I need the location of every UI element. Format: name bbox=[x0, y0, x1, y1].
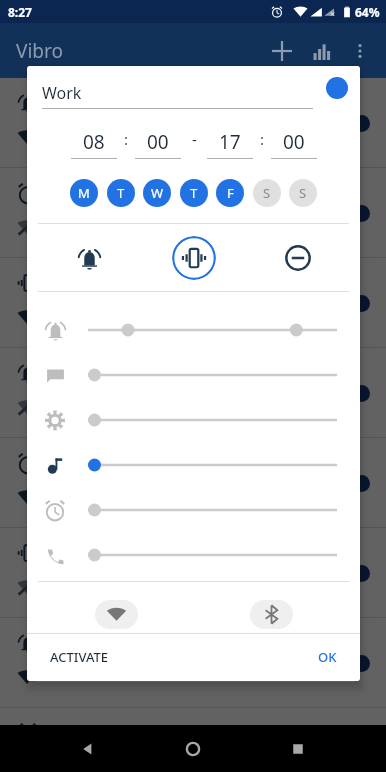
staticText: ACTIVATE bbox=[50, 648, 109, 666]
button[interactable] bbox=[0, 258, 386, 348]
button[interactable]: More options bbox=[342, 33, 378, 69]
button[interactable]: Wifi bbox=[95, 600, 138, 629]
staticText: OK bbox=[318, 648, 337, 666]
staticText: : bbox=[124, 129, 129, 149]
button[interactable]: Color bbox=[326, 77, 348, 99]
button[interactable] bbox=[0, 708, 386, 772]
button[interactable]: Recents bbox=[281, 732, 315, 766]
button[interactable]: Vibrate bbox=[172, 236, 216, 280]
staticText: T bbox=[117, 184, 125, 202]
button[interactable]: Add bbox=[262, 31, 302, 71]
button[interactable] bbox=[88, 542, 337, 568]
button[interactable] bbox=[88, 317, 337, 343]
button[interactable] bbox=[88, 407, 337, 433]
button[interactable] bbox=[0, 528, 386, 618]
staticText: : bbox=[260, 129, 265, 149]
button[interactable] bbox=[0, 438, 386, 528]
staticText: 8:27 bbox=[8, 4, 32, 20]
button[interactable] bbox=[0, 168, 386, 258]
button[interactable]: Statistics bbox=[302, 31, 342, 71]
button[interactable]: F bbox=[216, 179, 244, 207]
button[interactable]: Mute bbox=[276, 236, 320, 280]
button[interactable]: S bbox=[253, 179, 281, 207]
button[interactable] bbox=[88, 452, 337, 478]
button[interactable]: Home bbox=[176, 732, 210, 766]
button[interactable]: Back bbox=[71, 732, 105, 766]
staticText: M bbox=[78, 184, 90, 202]
staticText: Vibro bbox=[16, 38, 63, 64]
staticText: S bbox=[263, 184, 271, 202]
button[interactable]: M bbox=[70, 179, 98, 207]
staticText: T bbox=[190, 184, 198, 202]
staticText: 64% bbox=[355, 4, 380, 20]
button[interactable] bbox=[88, 497, 337, 523]
button[interactable]: OK bbox=[309, 640, 346, 674]
staticText: W bbox=[151, 184, 164, 202]
button[interactable]: ACTIVATE bbox=[41, 640, 118, 674]
staticText: - bbox=[192, 129, 197, 149]
button[interactable]: T bbox=[180, 179, 208, 207]
staticText: 00 bbox=[283, 129, 305, 155]
button[interactable]: Ring bbox=[67, 236, 111, 280]
button[interactable]: T bbox=[107, 179, 135, 207]
button[interactable]: Bluetooth bbox=[250, 600, 293, 629]
staticText: 00 bbox=[147, 129, 169, 155]
staticText: F bbox=[227, 184, 234, 202]
staticText: S bbox=[299, 184, 307, 202]
staticText: 17 bbox=[219, 129, 241, 155]
button[interactable] bbox=[0, 348, 386, 438]
staticText: Work bbox=[42, 82, 82, 104]
staticText: 08 bbox=[83, 129, 105, 155]
button[interactable] bbox=[0, 78, 386, 168]
button[interactable] bbox=[0, 618, 386, 708]
button[interactable] bbox=[88, 362, 337, 388]
button[interactable]: S bbox=[289, 179, 317, 207]
button[interactable]: W bbox=[143, 179, 171, 207]
